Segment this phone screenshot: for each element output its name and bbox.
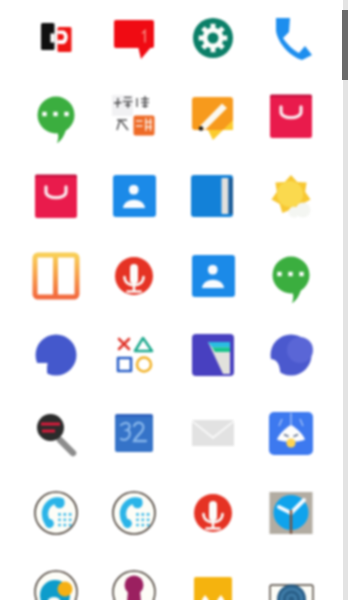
button[interactable]: Dialer: [0, 468, 78, 546]
button[interactable]: Search: [0, 390, 78, 468]
button[interactable]: Photos: [156, 546, 234, 600]
button[interactable]: Phone: [234, 0, 312, 78]
button[interactable]: Notes: [156, 78, 234, 156]
button[interactable]: Drive: [156, 312, 234, 390]
button[interactable]: Shop: [234, 78, 312, 156]
button[interactable]: Weather: [234, 156, 312, 234]
button[interactable]: Calendar: [78, 390, 156, 468]
button[interactable]: Recorder: [156, 468, 234, 546]
button[interactable]: Settings: [156, 0, 234, 78]
button[interactable]: Contacts backup: [0, 0, 78, 78]
button[interactable]: QQ: [0, 312, 78, 390]
button[interactable]: Contacts: [78, 156, 156, 234]
button[interactable]: File manager: [156, 156, 234, 234]
button[interactable]: Shop: [0, 156, 78, 234]
button[interactable]: Dialer: [78, 468, 156, 546]
button[interactable]: Email: [156, 390, 234, 468]
button[interactable]: WeChat: [0, 78, 78, 156]
button[interactable]: Crossword: [78, 78, 156, 156]
button[interactable]: Cloud: [234, 390, 312, 468]
button[interactable]: Clock: [234, 468, 312, 546]
button[interactable]: Camera roll: [0, 546, 78, 600]
button[interactable]: Contacts: [156, 234, 234, 312]
button[interactable]: App store: [78, 312, 156, 390]
button[interactable]: Camera: [234, 546, 312, 600]
button[interactable]: Profile: [78, 546, 156, 600]
button[interactable]: Gallery bars: [0, 234, 78, 312]
button[interactable]: Browser: [234, 312, 312, 390]
button[interactable]: Messages: [78, 0, 156, 78]
button[interactable]: WeChat: [234, 234, 312, 312]
button[interactable]: Recorder: [78, 234, 156, 312]
